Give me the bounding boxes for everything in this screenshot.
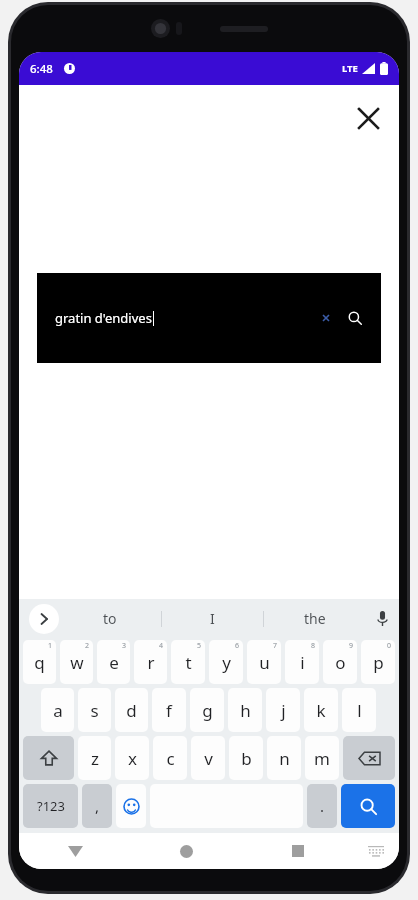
staticText: y (222, 651, 231, 674)
button[interactable]: v (191, 736, 225, 780)
button[interactable]: Search (343, 306, 367, 330)
staticText: o (335, 651, 346, 674)
button[interactable]: f (152, 688, 186, 732)
staticText: 6:48 (30, 61, 53, 77)
button[interactable]: k (304, 688, 338, 732)
staticText: a (53, 699, 63, 722)
staticText: to (103, 609, 117, 628)
staticText: j (281, 699, 286, 722)
staticText: u (259, 651, 270, 674)
button[interactable]: r (134, 640, 167, 684)
button[interactable]: i (285, 640, 319, 684)
button[interactable]: to (59, 599, 161, 638)
staticText: p (373, 651, 384, 674)
staticText: l (357, 699, 362, 722)
staticText: 4 (159, 641, 164, 651)
staticText: s (90, 699, 99, 722)
staticText: 5 (197, 641, 202, 651)
staticText: g (202, 699, 213, 722)
staticText: c (166, 747, 175, 770)
staticText: d (126, 699, 137, 722)
button[interactable]: Close (345, 95, 391, 141)
staticText: f (166, 699, 172, 722)
button[interactable]: Home (131, 833, 242, 869)
button[interactable]: w (60, 640, 93, 684)
button[interactable]: Emoji (116, 784, 146, 828)
button[interactable]: Shift (23, 736, 74, 780)
staticText: x (128, 747, 137, 770)
staticText: 8 (311, 641, 316, 651)
staticText: k (316, 699, 326, 722)
staticText: , (95, 796, 100, 816)
staticText: z (91, 747, 99, 770)
staticText: w (70, 651, 84, 674)
staticText: m (314, 747, 330, 770)
button[interactable]: ?123 (23, 784, 78, 828)
staticText: e (109, 651, 119, 674)
staticText: t (185, 651, 192, 674)
staticText: q (34, 651, 45, 674)
button[interactable]: d (115, 688, 148, 732)
staticText: b (241, 747, 252, 770)
button[interactable]: t (171, 640, 205, 684)
button[interactable]: Recent apps (242, 833, 353, 869)
button[interactable]: e (97, 640, 130, 684)
button[interactable]: Voice input (365, 599, 399, 638)
button[interactable]: m (305, 736, 339, 780)
staticText: the (304, 609, 326, 628)
button[interactable]: z (78, 736, 111, 780)
staticText: 3 (122, 641, 127, 651)
staticText: . (320, 796, 325, 816)
button[interactable]: j (266, 688, 300, 732)
staticText: v (204, 747, 213, 770)
button[interactable]: o (323, 640, 357, 684)
staticText: ?123 (37, 797, 65, 815)
button[interactable]: Clear (317, 309, 335, 327)
staticText: 7 (273, 641, 278, 651)
staticText: LTE (342, 62, 358, 75)
staticText: gratin d'endives (55, 309, 152, 327)
button[interactable]: b (229, 736, 263, 780)
button[interactable]: Backspace (343, 736, 395, 780)
staticText: r (147, 651, 155, 674)
staticText: n (279, 747, 290, 770)
button[interactable]: q (23, 640, 56, 684)
button[interactable]: p (361, 640, 395, 684)
button[interactable]: More suggestions (29, 604, 59, 634)
button[interactable]: s (78, 688, 111, 732)
button[interactable]: the (264, 599, 365, 638)
staticText: 9 (349, 641, 354, 651)
staticText: 6 (235, 641, 240, 651)
staticText: 1 (48, 641, 53, 651)
staticText: 2 (85, 641, 90, 651)
staticText: h (240, 699, 251, 722)
staticText: i (300, 651, 305, 674)
button[interactable]: n (267, 736, 301, 780)
button[interactable]: c (153, 736, 187, 780)
button[interactable]: Switch keyboard (353, 833, 399, 869)
button[interactable]: Search (341, 784, 395, 828)
button[interactable]: l (342, 688, 376, 732)
button[interactable]: g (190, 688, 224, 732)
button[interactable]: Back (19, 833, 131, 869)
button[interactable]: gratin d'endives (37, 273, 381, 363)
button[interactable]: a (41, 688, 74, 732)
staticText: I (210, 609, 215, 628)
button[interactable]: y (209, 640, 243, 684)
button[interactable]: . (307, 784, 337, 828)
button[interactable]: h (228, 688, 262, 732)
staticText: 0 (387, 641, 392, 651)
button[interactable]: , (82, 784, 112, 828)
button[interactable]: I (162, 599, 263, 638)
button[interactable]: x (115, 736, 149, 780)
button[interactable]: u (247, 640, 281, 684)
